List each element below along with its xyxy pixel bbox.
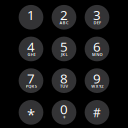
staticText: # [93,105,101,121]
staticText: PQRS [26,83,37,89]
staticText: 8 [60,69,68,87]
button[interactable]: 0 + [52,100,76,125]
button[interactable]: 7 PQRS [19,68,43,93]
button[interactable]: 5 JKL [52,37,76,61]
staticText: GHI [27,52,35,57]
button[interactable]: 6 MNO [85,37,109,61]
staticText: 3 [93,6,101,24]
button[interactable]: 1 [19,5,43,30]
button[interactable]: 8 TUV [52,68,76,93]
staticText: ABC [59,20,69,25]
button[interactable]: 4 GHI [19,37,43,61]
staticText: 9 [93,69,101,87]
button[interactable]: pound [85,100,109,125]
staticText: MNO [92,52,103,57]
button[interactable]: star [19,100,43,125]
staticText: 0 [60,100,68,118]
staticText: 6 [93,38,101,55]
staticText: 4 [27,38,35,55]
staticText: * [27,105,35,124]
button[interactable]: 9 WXYZ [85,68,109,93]
staticText: 1 [27,6,35,24]
staticText: 7 [27,69,35,87]
staticText: 2 [60,6,68,24]
button[interactable]: 3 DEF [85,5,109,30]
staticText: JKL [61,52,68,57]
staticText: + [63,114,66,121]
staticText: 5 [60,38,68,55]
staticText: WXYZ [91,83,103,89]
staticText: DEF [93,20,101,25]
staticText: TUV [60,83,69,89]
button[interactable]: 2 ABC [52,5,76,30]
